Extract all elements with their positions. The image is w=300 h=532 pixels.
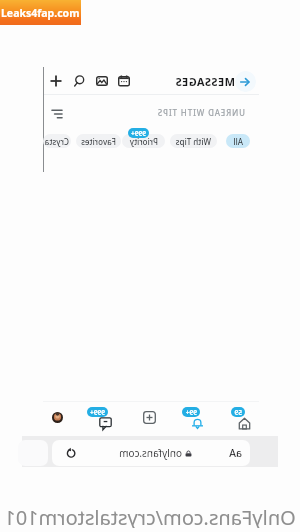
staticText: Priority xyxy=(129,136,158,147)
staticText: With Tips xyxy=(175,136,211,147)
staticText: OnlyFans.com/crystalstorm101 xyxy=(4,504,296,528)
button[interactable]: Favorites xyxy=(76,134,121,148)
staticText: UNREAD WITH TIPS xyxy=(157,107,245,118)
button[interactable]: Back xyxy=(235,71,256,92)
staticText: MESSAGES xyxy=(175,74,235,89)
button[interactable]: Home xyxy=(226,404,260,430)
button[interactable]: Reload xyxy=(61,443,81,463)
button[interactable]: All xyxy=(226,134,250,148)
button[interactable]: Notifications xyxy=(179,404,213,430)
staticText: 59 xyxy=(234,408,242,417)
button[interactable]: Sort xyxy=(48,104,67,123)
button[interactable]: Search xyxy=(70,72,88,90)
button[interactable]: Schedule xyxy=(115,72,133,90)
button[interactable]: Crysta xyxy=(43,134,71,148)
button[interactable]: Messages xyxy=(87,404,121,430)
button[interactable]: New message xyxy=(47,72,65,90)
button[interactable]: Priority xyxy=(122,134,165,148)
staticText: 999+ xyxy=(90,408,105,417)
staticText: 99+ xyxy=(185,408,197,417)
button[interactable]: Media xyxy=(93,72,111,90)
staticText: onlyfans.com xyxy=(119,446,182,460)
staticText: Favorites xyxy=(81,136,116,147)
staticText: Leaks4fap.com xyxy=(1,6,80,20)
button[interactable]: With Tips xyxy=(170,134,217,148)
button[interactable]: New post xyxy=(133,404,167,430)
staticText: 999+ xyxy=(131,129,146,138)
button[interactable]: Profile xyxy=(41,404,75,430)
staticText: All xyxy=(233,136,243,147)
staticText: aA xyxy=(229,446,242,460)
button[interactable]: Text size xyxy=(226,443,246,463)
staticText: Crysta xyxy=(44,136,69,147)
button[interactable] xyxy=(52,440,250,466)
